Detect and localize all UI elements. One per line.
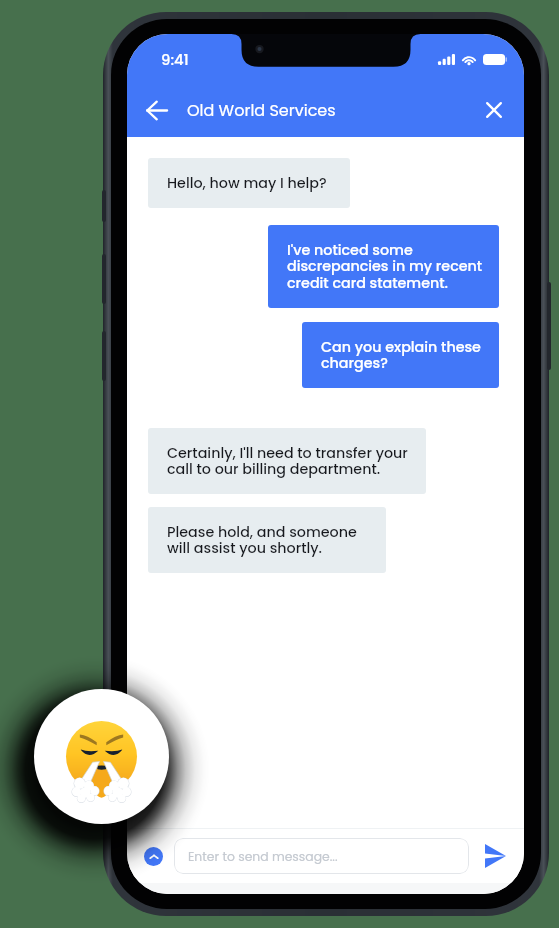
staticText: Hello, how may I help? [167, 173, 327, 193]
button[interactable]: Expand options [144, 847, 163, 866]
button[interactable]: I've noticed some discrepancies in my re… [268, 225, 499, 308]
button[interactable]: Close [473, 89, 515, 131]
button[interactable]: Hello, how may I help? [148, 158, 350, 208]
staticText: 9:41 [161, 49, 189, 70]
button[interactable]: Back [136, 89, 178, 131]
staticText: I've noticed some discrepancies in my re… [287, 240, 483, 293]
button[interactable]: Please hold, and someone will assist you… [148, 507, 386, 573]
staticText: Please hold, and someone will assist you… [167, 522, 357, 558]
staticText: Enter to send message... [188, 848, 338, 865]
staticText: Can you explain these charges? [321, 337, 481, 373]
staticText: Old World Services [187, 99, 336, 121]
button[interactable]: Enter to send message... [174, 838, 469, 874]
button[interactable]: Send [482, 843, 508, 869]
button[interactable]: Certainly, I'll need to transfer your ca… [148, 428, 426, 494]
staticText: Certainly, I'll need to transfer your ca… [167, 443, 408, 479]
button[interactable]: Can you explain these charges? [302, 322, 499, 388]
